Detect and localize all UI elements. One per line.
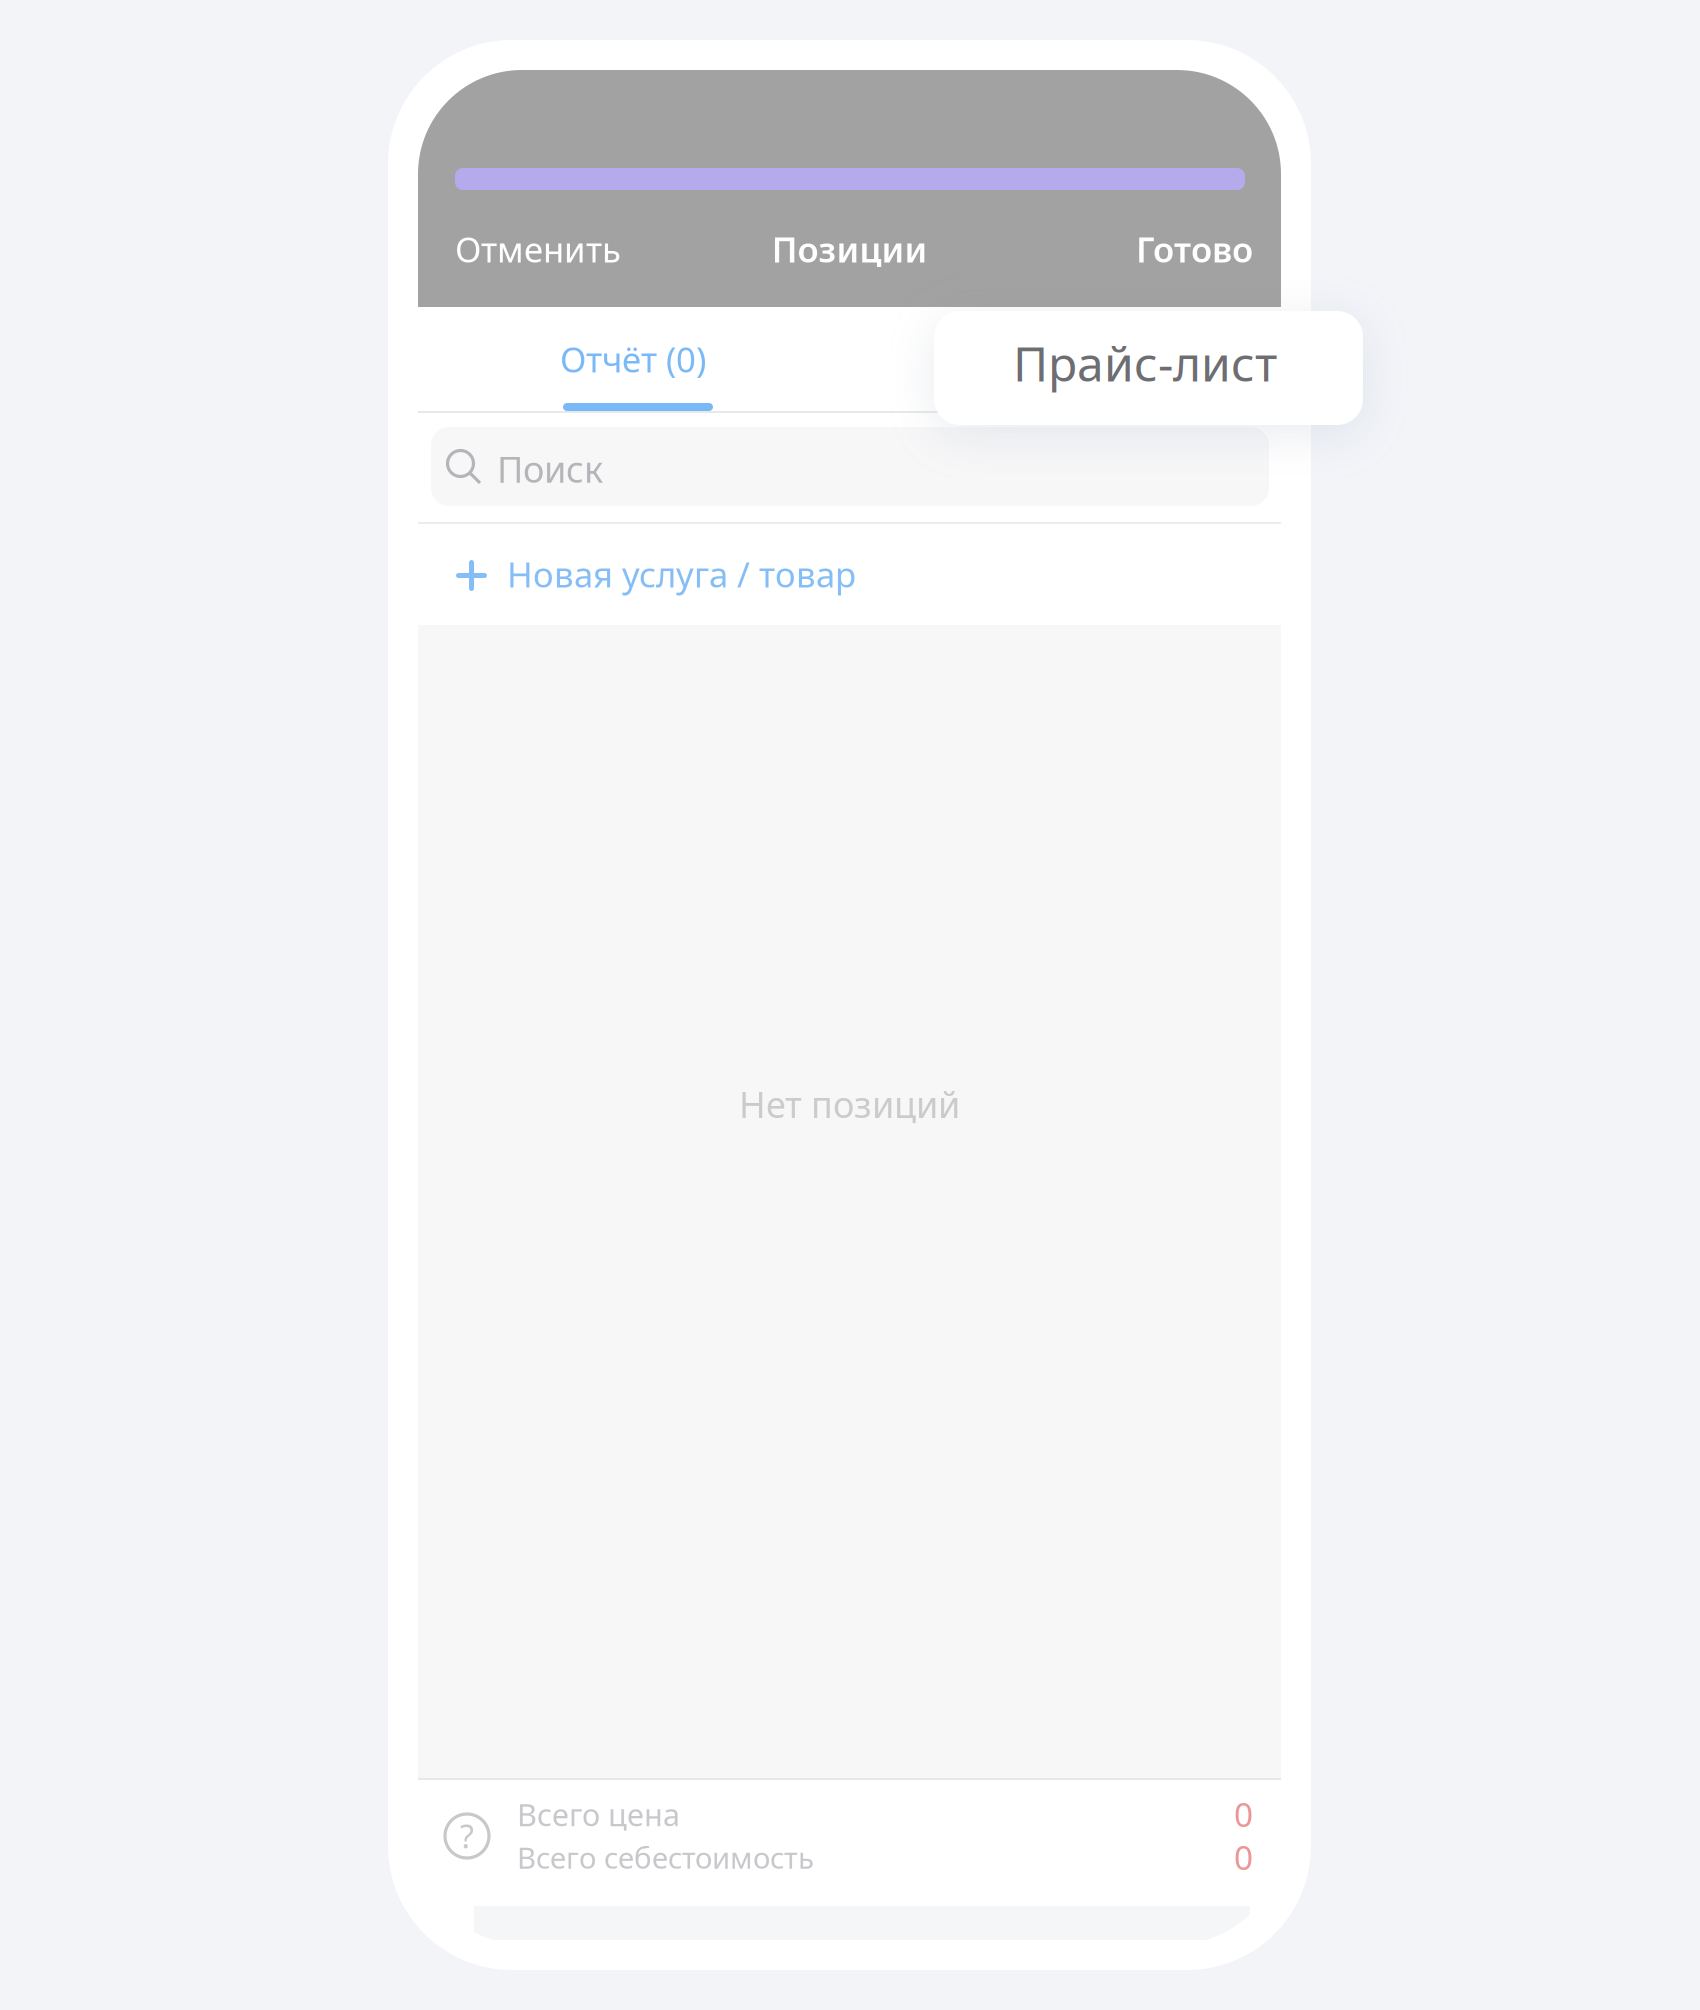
staticText: Поиск xyxy=(497,445,603,493)
button[interactable]: Отчёт (0) xyxy=(489,307,777,413)
button[interactable]: Прайс-лист xyxy=(934,311,1363,425)
staticText: Нет позиций xyxy=(739,1080,960,1128)
staticText: Всего себестоимость xyxy=(517,1838,814,1877)
button[interactable]: Справка по итогам xyxy=(445,1814,489,1858)
staticText: Новая услуга / товар xyxy=(507,551,856,597)
staticText: Прайс-лист xyxy=(1013,331,1277,395)
staticText: Отменить xyxy=(455,226,621,272)
staticText: Всего цена xyxy=(517,1794,680,1835)
button[interactable]: Готово xyxy=(1053,222,1253,276)
staticText: Готово xyxy=(1136,226,1253,272)
staticText: 0 xyxy=(1234,1792,1253,1836)
button[interactable]: Отменить xyxy=(455,222,685,276)
button[interactable]: Поиск xyxy=(431,427,1269,506)
button[interactable]: Новая услуга / товар xyxy=(418,524,1281,625)
staticText: Позиции xyxy=(771,226,927,272)
staticText: 0 xyxy=(1234,1835,1253,1879)
staticText: Отчёт (0) xyxy=(560,336,706,382)
staticText: ? xyxy=(460,1815,474,1857)
